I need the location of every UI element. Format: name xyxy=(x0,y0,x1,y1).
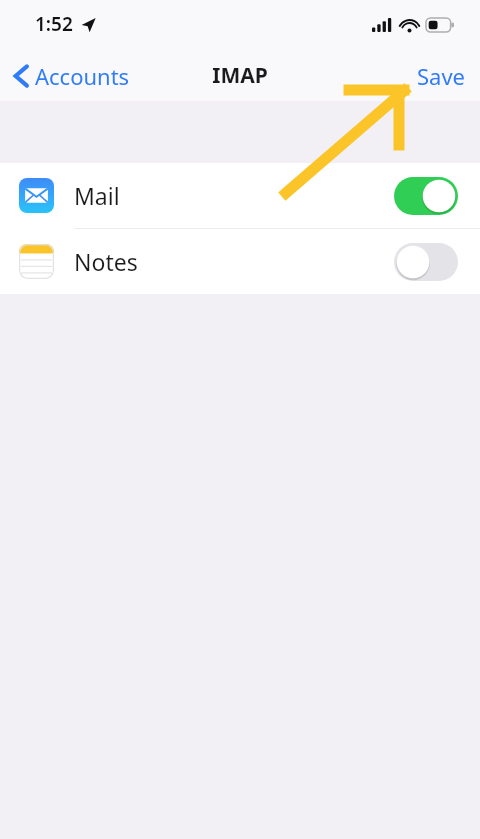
button[interactable]: Notes xyxy=(0,229,480,294)
staticText: Notes xyxy=(74,246,138,277)
button[interactable]: Mail xyxy=(0,163,480,228)
staticText: Save xyxy=(417,61,466,91)
staticText: 1:52 xyxy=(35,11,73,37)
button[interactable]: Save xyxy=(403,55,480,97)
staticText: IMAP xyxy=(212,61,268,90)
staticText: Mail xyxy=(74,180,120,211)
button[interactable]: Toggle on xyxy=(394,177,458,215)
button[interactable]: Toggle off xyxy=(394,243,458,281)
button[interactable]: Accounts xyxy=(0,55,140,97)
staticText: Accounts xyxy=(35,61,130,91)
